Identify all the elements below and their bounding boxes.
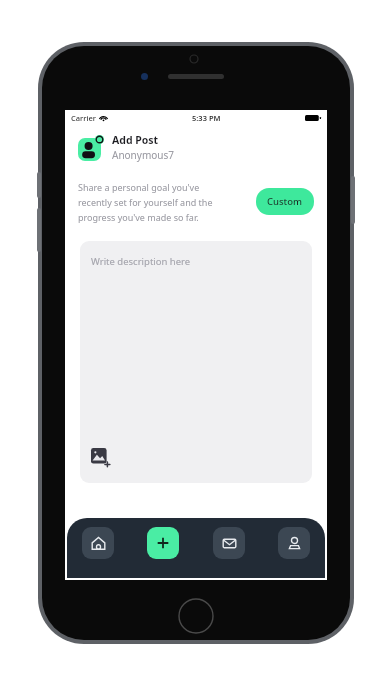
staticText: recently set for yourself and the: [78, 196, 213, 208]
button[interactable]: Custom: [256, 188, 314, 215]
button[interactable]: Write description here: [80, 241, 312, 483]
button[interactable]: Profile: [278, 527, 310, 559]
staticText: Add Post: [112, 133, 159, 147]
button[interactable]: Messages: [213, 527, 245, 559]
staticText: Write description here: [91, 255, 191, 268]
button[interactable]: Home: [82, 527, 114, 559]
staticText: Share a personal goal you've: [78, 181, 200, 193]
staticText: progress you've made so far.: [78, 211, 199, 223]
staticText: Carrier: [71, 113, 96, 123]
button[interactable]: Add post: [147, 527, 179, 559]
staticText: 5:33 PM: [192, 113, 221, 123]
staticText: Anonymous7: [112, 148, 174, 162]
staticText: Custom: [267, 195, 303, 208]
button[interactable]: Add image: [91, 448, 111, 468]
